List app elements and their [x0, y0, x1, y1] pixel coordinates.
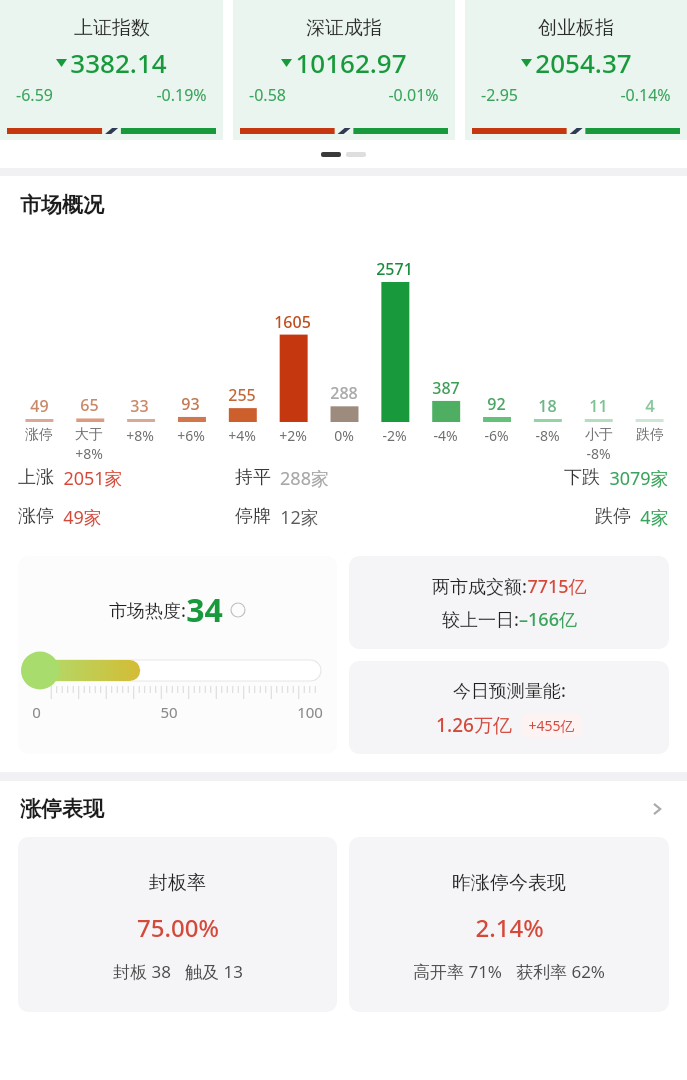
- staticText: 涨停: [18, 505, 54, 528]
- button[interactable]: 今日预测量能:: [349, 661, 669, 754]
- button[interactable]: 市场热度:: [18, 556, 337, 754]
- staticText: –166亿: [519, 607, 577, 632]
- staticText: 涨停: [25, 426, 53, 444]
- staticText: 封板 38: [113, 960, 171, 983]
- staticText: 上证指数: [74, 16, 150, 40]
- staticText: 停牌: [235, 505, 271, 528]
- staticText: -6%: [484, 426, 509, 445]
- staticText: 75.00%: [137, 911, 219, 944]
- staticText: 下跌: [564, 466, 600, 489]
- staticText: 34: [186, 588, 223, 632]
- staticText: 288家: [280, 466, 329, 491]
- staticText: 持平: [235, 466, 271, 489]
- button[interactable]: 涨停表现: [0, 781, 687, 837]
- staticText: -0.19%: [156, 84, 207, 106]
- other: 查看涨停表现: [647, 799, 667, 819]
- staticText: 小于: [585, 426, 613, 444]
- staticText: -8%: [586, 444, 611, 463]
- staticText: 上涨: [18, 466, 54, 489]
- staticText: 387: [432, 377, 460, 399]
- staticText: 市场热度:: [109, 598, 186, 623]
- staticText: -0.58: [249, 84, 286, 106]
- staticText: 12家: [280, 505, 319, 530]
- staticText: -2%: [382, 426, 407, 445]
- staticText: -2.95: [481, 84, 518, 106]
- staticText: 跌停: [636, 426, 664, 444]
- staticText: -0.14%: [620, 84, 671, 106]
- staticText: 4: [645, 395, 655, 417]
- staticText: 288: [330, 382, 358, 404]
- staticText: +4%: [228, 426, 256, 445]
- staticText: 较上一日:: [442, 607, 519, 632]
- staticText: 50: [160, 702, 178, 722]
- button[interactable]: 创业板指: [465, 0, 687, 140]
- staticText: -4%: [433, 426, 458, 445]
- staticText: 2.14%: [475, 911, 544, 944]
- button[interactable]: 昨涨停今表现: [349, 837, 669, 1012]
- staticText: 2051家: [63, 466, 123, 491]
- staticText: 市场概况: [20, 192, 104, 218]
- staticText: 0%: [334, 426, 354, 445]
- staticText: 4家: [640, 505, 669, 530]
- staticText: 今日预测量能:: [453, 678, 566, 703]
- button[interactable]: 两市成交额:: [349, 556, 669, 649]
- staticText: 18: [538, 395, 557, 417]
- staticText: 3079家: [609, 466, 669, 491]
- button[interactable]: 深证成指: [233, 0, 455, 140]
- staticText: 0: [32, 702, 41, 722]
- staticText: 49: [30, 395, 49, 417]
- staticText: 涨停表现: [20, 796, 104, 822]
- staticText: 49家: [63, 505, 102, 530]
- staticText: +8%: [75, 444, 103, 463]
- staticText: 10162.97: [295, 45, 407, 80]
- staticText: 255: [228, 384, 256, 406]
- staticText: -6.59: [16, 84, 53, 106]
- staticText: -0.01%: [388, 84, 439, 106]
- staticText: 获利率 62%: [516, 960, 605, 983]
- staticText: 93: [181, 393, 200, 415]
- staticText: 2571: [376, 258, 413, 280]
- staticText: 100: [297, 702, 323, 722]
- staticText: 7715亿: [527, 574, 587, 599]
- staticText: 33: [130, 395, 149, 417]
- staticText: 2054.37: [535, 45, 632, 80]
- staticText: 创业板指: [538, 16, 614, 40]
- staticText: 深证成指: [306, 16, 382, 40]
- staticText: 昨涨停今表现: [452, 871, 566, 895]
- staticText: +455亿: [528, 716, 575, 735]
- staticText: -8%: [535, 426, 560, 445]
- staticText: 高开率 71%: [413, 960, 502, 983]
- staticText: 3382.14: [70, 45, 167, 80]
- staticText: +2%: [279, 426, 307, 445]
- button[interactable]: 封板率: [18, 837, 337, 1012]
- staticText: +6%: [177, 426, 205, 445]
- staticText: 触及 13: [185, 960, 243, 983]
- staticText: +8%: [126, 426, 154, 445]
- staticText: 65: [80, 394, 99, 416]
- staticText: 封板率: [149, 871, 206, 895]
- button[interactable]: 上证指数: [0, 0, 223, 140]
- staticText: 跌停: [595, 505, 631, 528]
- staticText: 大于: [75, 426, 103, 444]
- staticText: 1.26万亿: [436, 712, 512, 738]
- staticText: 92: [487, 393, 506, 415]
- staticText: 1605: [274, 311, 311, 333]
- staticText: 11: [589, 395, 608, 417]
- staticText: 两市成交额:: [432, 574, 527, 599]
